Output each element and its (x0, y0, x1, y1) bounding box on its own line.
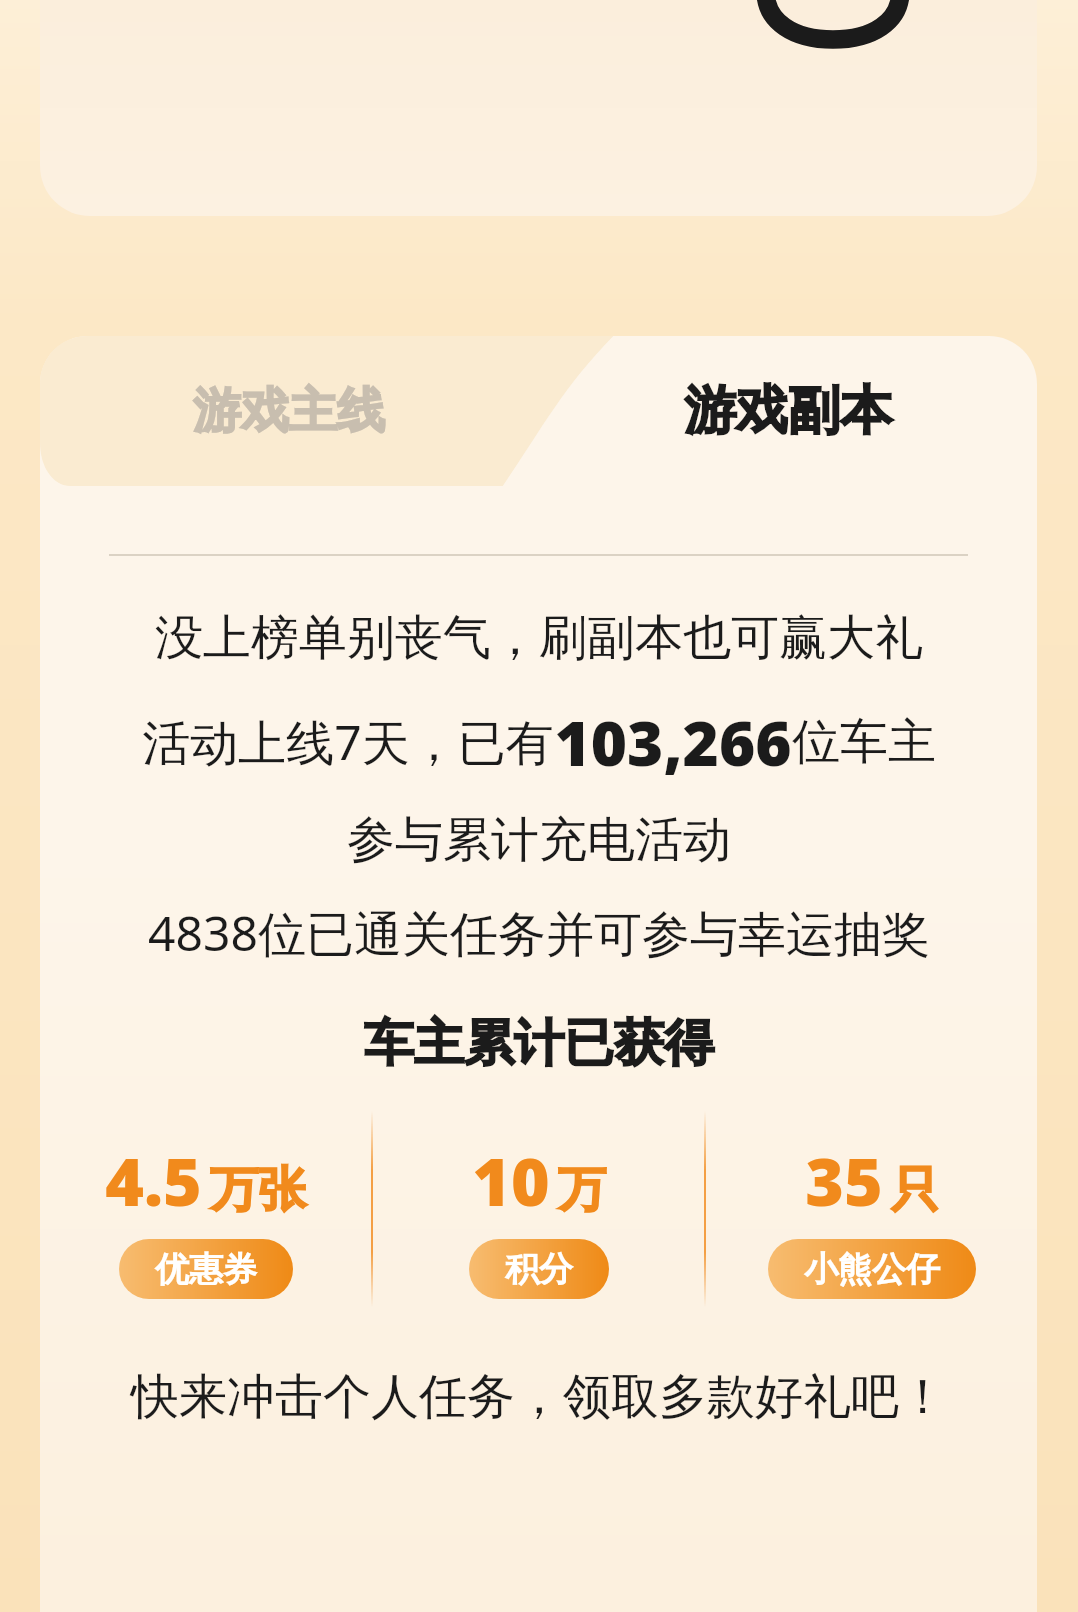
button[interactable]: Gift hand icon (40, 0, 1037, 216)
staticText: 参与累计充电活动 (347, 810, 731, 870)
staticText: 游戏主线 (193, 381, 385, 441)
staticText: 10 (472, 1135, 550, 1225)
button[interactable]: 小熊公仔 (768, 1239, 976, 1299)
button[interactable]: 10 (373, 1111, 704, 1307)
staticText: 没上榜单别丧气，刷副本也可赢大礼 (155, 608, 923, 668)
staticText: 小熊公仔 (804, 1248, 940, 1291)
staticText: 4.5 (105, 1135, 202, 1225)
button[interactable]: 优惠券 (119, 1239, 293, 1299)
staticText: 万张 (210, 1160, 306, 1220)
button[interactable]: 35 (706, 1111, 1037, 1307)
staticText: 位车主 (792, 712, 936, 772)
staticText: 快来冲击个人任务，领取多款好礼吧！ (131, 1367, 947, 1427)
staticText: 万 (558, 1160, 606, 1220)
staticText: 4838位已通关任务并可参与幸运抽奖 (148, 900, 930, 966)
other: Gift hand icon (758, 0, 908, 46)
staticText: 35 (805, 1135, 883, 1225)
button[interactable]: 游戏主线 (40, 336, 538, 486)
staticText: 只 (891, 1160, 939, 1220)
button[interactable]: 积分 (469, 1239, 609, 1299)
staticText: 车主累计已获得 (364, 1012, 714, 1075)
staticText: 游戏副本 (684, 378, 892, 444)
staticText: 积分 (505, 1248, 573, 1291)
staticText: 优惠券 (155, 1248, 257, 1291)
button[interactable]: 游戏副本 (538, 336, 1037, 486)
button[interactable]: 4.5 (40, 1111, 371, 1307)
staticText: 活动上线7天，已有 (142, 709, 554, 775)
staticText: 103,266 (554, 700, 792, 784)
